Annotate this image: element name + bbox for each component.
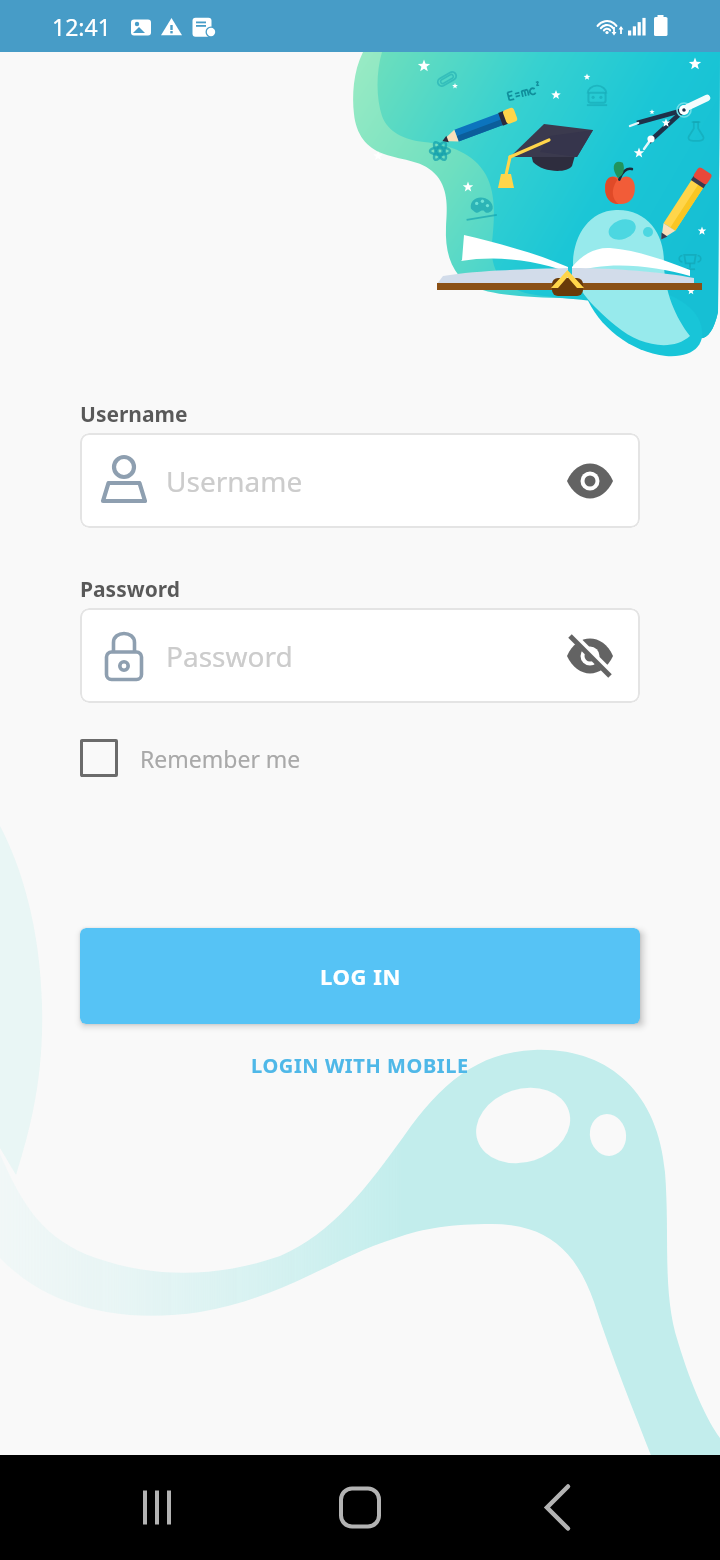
- button[interactable]: LOGIN WITH MOBILE: [231, 1044, 489, 1087]
- staticText: Password: [80, 575, 181, 604]
- staticText: Remember me: [140, 743, 301, 774]
- staticText: 12:41: [52, 11, 111, 42]
- button[interactable]: LOG IN: [80, 928, 640, 1024]
- staticText: Password: [166, 637, 293, 675]
- staticText: LOGIN WITH MOBILE: [251, 1052, 469, 1079]
- staticText: LOG IN: [320, 961, 401, 991]
- button[interactable]: Password: [80, 608, 640, 703]
- button[interactable]: Username: [80, 433, 640, 528]
- button[interactable]: Hide password: [558, 624, 622, 688]
- staticText: Username: [166, 462, 303, 500]
- button[interactable]: Remember me: [80, 739, 301, 777]
- button[interactable]: Show password: [558, 449, 622, 513]
- staticText: Username: [80, 400, 188, 429]
